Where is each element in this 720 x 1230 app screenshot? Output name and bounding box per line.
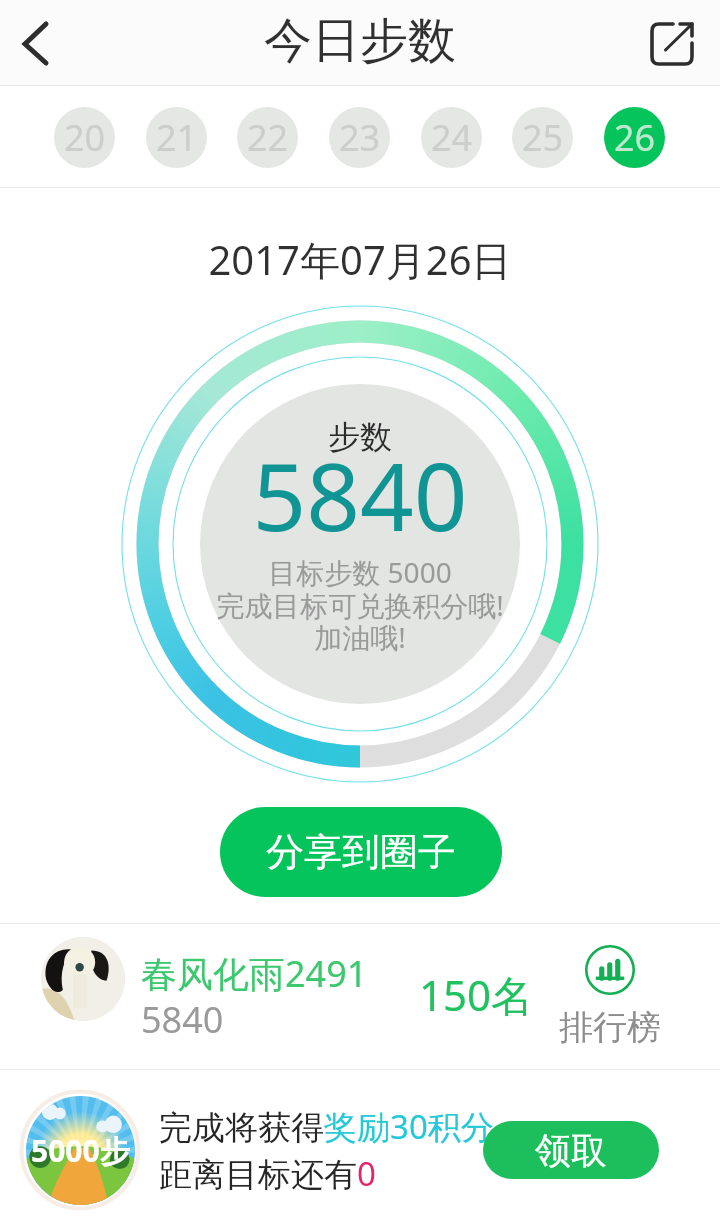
staticText: 21 xyxy=(156,113,198,162)
button[interactable]: 25 xyxy=(512,107,573,168)
button[interactable]: 26 xyxy=(604,107,665,168)
button[interactable]: 24 xyxy=(421,107,482,168)
staticText: 完成将获得奖励30积分 距离目标还有0 xyxy=(159,1104,494,1196)
staticText: 春风化雨2491 xyxy=(141,949,368,998)
button[interactable]: 20 xyxy=(54,107,115,168)
staticText: 加油哦! xyxy=(120,618,600,656)
staticText: 目标步数 5000 xyxy=(120,553,600,591)
staticText: 今日步数 xyxy=(264,11,456,71)
button[interactable]: 分享到圈子 xyxy=(220,807,502,897)
staticText: 完成目标可兑换积分哦! xyxy=(120,586,600,624)
staticText: 步数 xyxy=(120,417,600,457)
button[interactable]: 22 xyxy=(237,107,298,168)
staticText: 23 xyxy=(339,113,381,162)
staticText: 5000步 xyxy=(31,1130,130,1171)
button[interactable]: 排行榜 xyxy=(551,945,669,1049)
staticText: 22 xyxy=(247,113,289,162)
staticText: 26 xyxy=(614,113,656,162)
staticText: 5840 xyxy=(120,431,600,559)
staticText: 2017年07月26日 xyxy=(0,232,720,287)
staticText: 25 xyxy=(522,113,564,162)
staticText: 排行榜 xyxy=(559,1006,661,1049)
staticText: 24 xyxy=(431,113,473,162)
button[interactable]: Back xyxy=(0,0,90,86)
button[interactable]: Share xyxy=(628,0,720,86)
staticText: 领取 xyxy=(535,1128,607,1173)
staticText: 分享到圈子 xyxy=(266,828,456,876)
button[interactable]: 23 xyxy=(329,107,390,168)
button[interactable]: 21 xyxy=(146,107,207,168)
staticText: 20 xyxy=(64,113,106,162)
button[interactable]: 领取 xyxy=(483,1121,659,1179)
staticText: 5840 xyxy=(141,995,224,1044)
staticText: 150名 xyxy=(419,966,534,1023)
